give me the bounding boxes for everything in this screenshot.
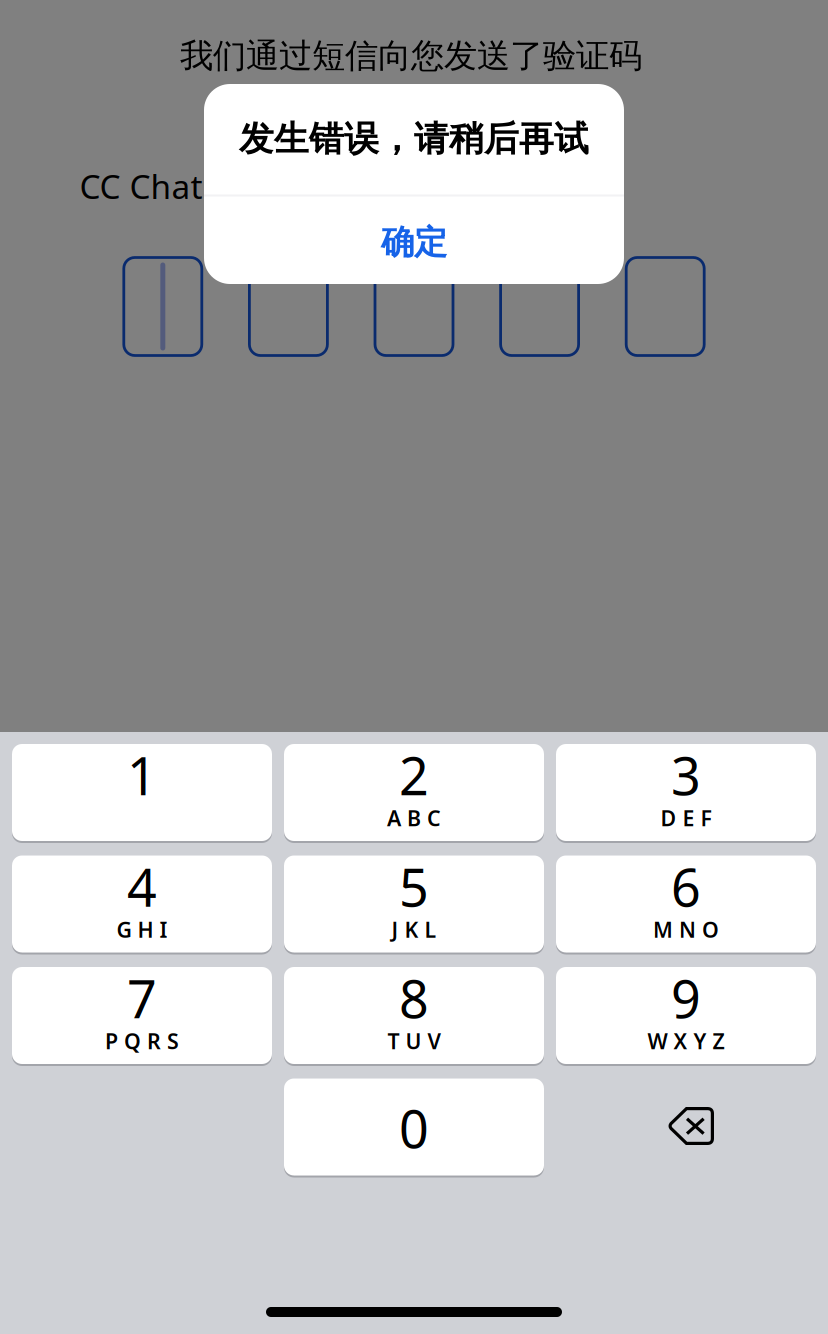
button[interactable]: 5 <box>284 854 544 953</box>
staticText: 5 <box>399 852 429 921</box>
button[interactable]: Verification code digit <box>501 257 579 355</box>
button[interactable]: 4 <box>12 854 272 953</box>
button[interactable]: 确定 <box>204 196 624 284</box>
button[interactable]: 1 <box>12 743 272 842</box>
button[interactable]: 0 <box>284 1077 544 1176</box>
staticText: 我们通过短信向您发送了验证码 <box>180 35 642 76</box>
staticText: A B C <box>387 804 441 832</box>
staticText: J K L <box>391 915 436 944</box>
staticText: M N O <box>653 915 719 944</box>
staticText: 8 <box>399 963 429 1033</box>
button[interactable]: Verification code digit <box>124 257 202 355</box>
staticText: 3 <box>671 740 701 810</box>
staticText: D E F <box>660 804 711 832</box>
button[interactable]: 3 <box>556 743 816 842</box>
button[interactable]: Verification code digit <box>375 257 453 355</box>
staticText: 7 <box>127 963 157 1033</box>
button[interactable]: 7 <box>12 966 272 1065</box>
staticText: P Q R S <box>105 1027 179 1055</box>
button[interactable]: Delete <box>561 1077 821 1174</box>
staticText: T U V <box>387 1027 440 1055</box>
button[interactable]: 2 <box>284 743 544 842</box>
staticText: 发生错误，请稍后再试 <box>239 118 589 160</box>
button[interactable]: Verification code digit <box>626 257 704 355</box>
staticText: 4 <box>127 852 157 921</box>
button[interactable]: 8 <box>284 966 544 1065</box>
staticText: 2 <box>399 740 429 810</box>
staticText: W X Y Z <box>647 1027 724 1055</box>
button[interactable]: 6 <box>556 854 816 953</box>
staticText: G H I <box>116 915 167 944</box>
staticText: 确定 <box>381 222 447 263</box>
staticText: 6 <box>671 852 701 921</box>
staticText: 0 <box>399 1093 429 1163</box>
staticText: 1 <box>127 740 157 810</box>
staticText: CC Chat <box>79 164 202 208</box>
button[interactable]: Verification code digit <box>249 257 327 355</box>
staticText: 9 <box>671 963 701 1033</box>
button[interactable]: 9 <box>556 966 816 1065</box>
